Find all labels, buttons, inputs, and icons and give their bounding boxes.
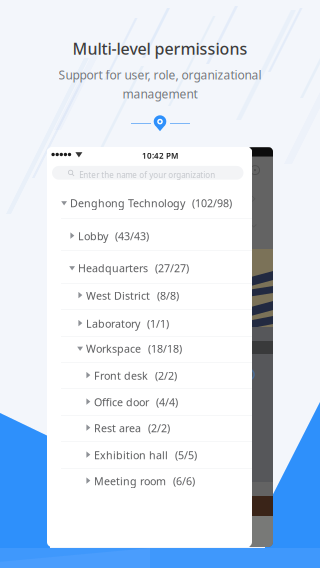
staticText: Denghong Technology — [70, 196, 185, 210]
button[interactable]: West District — [47, 282, 252, 308]
staticText: (5/5) — [175, 448, 197, 462]
staticText: Headquarters — [78, 261, 148, 275]
staticText: (18/18) — [148, 341, 182, 356]
button[interactable]: Workspace — [47, 335, 252, 361]
staticText: (6/6) — [173, 474, 195, 488]
staticText: Front desk — [94, 368, 148, 383]
staticText: (43/43) — [115, 229, 149, 243]
staticText: Office door — [94, 395, 149, 409]
staticText: Multi-level permissions — [72, 38, 247, 59]
button[interactable]: Exhibition hall — [47, 442, 252, 468]
button[interactable]: Denghong Technology — [47, 187, 252, 219]
button[interactable]: Lobby — [47, 220, 252, 252]
staticText: Support for user, role, organizational — [58, 67, 261, 83]
staticText: (4/4) — [156, 395, 178, 409]
staticText: Workspace — [86, 341, 141, 356]
staticText: Lobby — [78, 229, 108, 243]
button[interactable]: Office door — [47, 389, 252, 415]
button[interactable]: Rest area — [47, 415, 252, 441]
button[interactable]: Headquarters — [47, 252, 252, 284]
staticText: (102/98) — [192, 196, 232, 210]
staticText: management — [122, 86, 197, 102]
button[interactable]: Meeting room — [47, 468, 252, 494]
button[interactable]: Laboratory — [47, 310, 252, 336]
staticText: (1/1) — [147, 316, 169, 331]
staticText: (2/2) — [155, 368, 177, 383]
staticText: (2/2) — [148, 421, 170, 435]
staticText: Meeting room — [94, 474, 166, 488]
staticText: Rest area — [94, 421, 141, 435]
staticText: Exhibition hall — [94, 448, 168, 462]
staticText: West District — [86, 288, 150, 303]
staticText: 10:42 PM — [142, 150, 178, 161]
staticText: (27/27) — [155, 261, 189, 275]
staticText: Laboratory — [86, 316, 140, 331]
button[interactable]: Front desk — [47, 362, 252, 388]
staticText: (8/8) — [157, 288, 179, 303]
staticText: Enter the name of your organization — [79, 169, 215, 180]
button[interactable]: Enter the name of your organization — [52, 166, 243, 180]
